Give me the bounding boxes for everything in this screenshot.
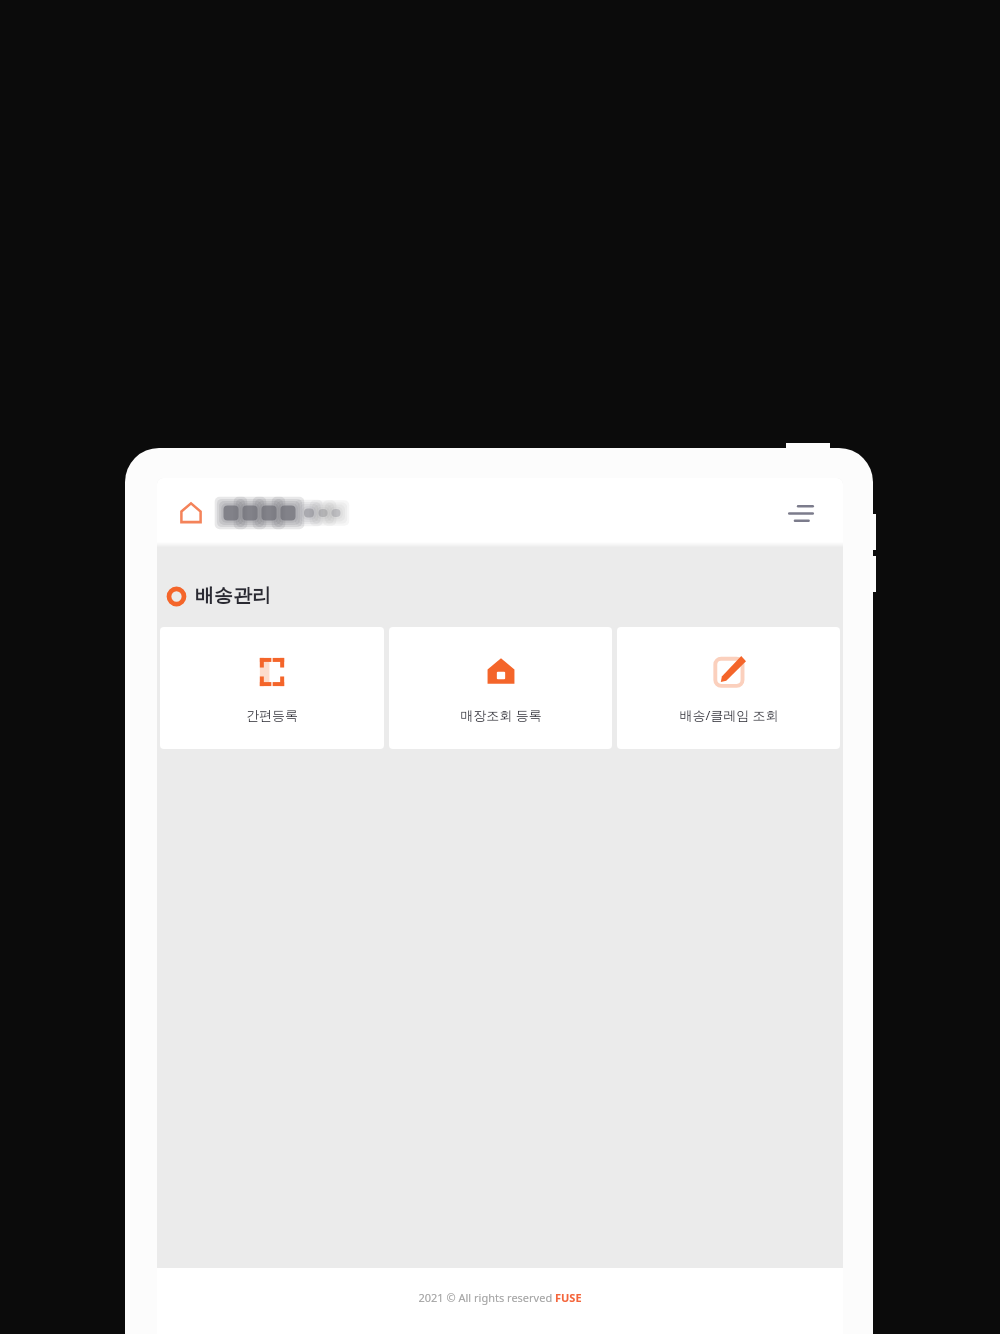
button[interactable]: 배송/클레임 조회 [617,627,840,749]
staticText: 2021 © All rights reserved FUSE [418,1290,582,1305]
button[interactable]: Menu [779,491,823,535]
staticText: 배송관리 [195,584,271,608]
button[interactable]: 간편등록 [160,627,384,749]
staticText: 배송/클레임 조회 [679,706,779,724]
staticText: 간편등록 [246,707,298,723]
staticText: 매장조회 등록 [460,706,542,724]
button[interactable]: Home [171,493,211,533]
button[interactable]: 매장조회 등록 [389,627,612,749]
